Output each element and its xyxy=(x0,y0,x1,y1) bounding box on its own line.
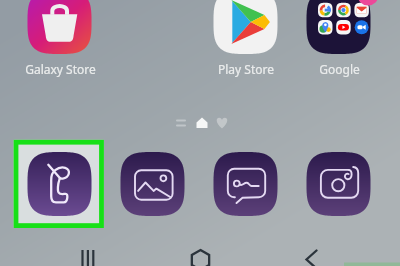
button[interactable]: Home xyxy=(179,238,223,266)
button[interactable]: Recent apps xyxy=(66,238,110,266)
staticText: Google xyxy=(319,61,360,77)
button[interactable]: Phone xyxy=(28,152,92,216)
button[interactable]: Gallery xyxy=(121,152,185,216)
button[interactable]: Favourites page xyxy=(213,114,231,132)
button[interactable]: Google xyxy=(307,0,371,54)
button[interactable]: Galaxy Store xyxy=(28,0,92,54)
button[interactable]: Camera xyxy=(307,152,371,216)
button[interactable]: Apps page xyxy=(172,114,190,132)
button[interactable]: Messages xyxy=(214,152,278,216)
button[interactable]: Play Store xyxy=(214,0,278,54)
button[interactable]: Home page xyxy=(193,114,211,132)
staticText: Galaxy Store xyxy=(25,61,96,77)
staticText: Play Store xyxy=(218,61,274,77)
button[interactable]: Back xyxy=(291,238,335,266)
